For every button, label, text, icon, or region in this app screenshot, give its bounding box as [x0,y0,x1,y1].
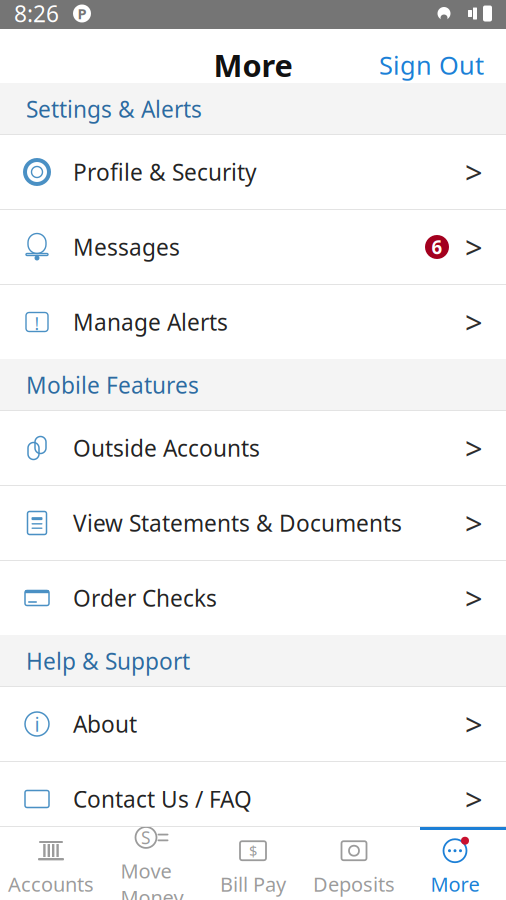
staticText: Manage Alerts [73,307,228,337]
staticText: About [73,709,137,739]
staticText: P [77,4,86,23]
staticText: Bill Pay [220,871,286,897]
button[interactable]: Deposits [303,830,404,900]
staticText: Help & Support [26,646,190,676]
staticText: Order Checks [73,583,217,613]
staticText: Profile & Security [73,157,257,187]
button[interactable]: Sign Out [365,36,498,94]
button[interactable]: More [404,830,505,900]
staticText: Accounts [8,871,94,897]
staticText: Messages [73,232,180,262]
button[interactable]: ! [0,285,506,359]
staticText: S [141,826,151,849]
button[interactable]: Outside Accounts [0,411,506,485]
button[interactable]: View Statements & Documents [0,486,506,560]
staticText: i [34,711,39,737]
staticText: > [465,578,483,618]
staticText: More [430,871,479,897]
staticText: > [465,503,483,543]
button[interactable]: S [101,830,202,900]
staticText: Mobile Features [26,370,199,400]
button[interactable]: Order Checks [0,561,506,635]
staticText: > [465,227,483,267]
staticText: > [465,704,483,744]
staticText: > [465,302,483,342]
staticText: Sign Out [379,48,484,82]
staticText: More [213,45,292,85]
staticText: View Statements & Documents [73,508,402,538]
button[interactable]: i [0,687,506,761]
staticText: Outside Accounts [73,433,260,463]
staticText: > [465,428,483,468]
staticText: 6 [431,235,442,259]
staticText: Deposits [313,871,395,897]
button[interactable]: Profile & Security [0,135,506,209]
button[interactable]: Accounts [0,830,101,900]
staticText: 8:26 [14,0,59,28]
button[interactable]: Messages [0,210,506,284]
button[interactable]: $ [202,830,303,900]
staticText: Settings & Alerts [26,94,202,124]
staticText: $ [249,841,257,860]
staticText: ! [34,312,39,335]
staticText: > [465,779,483,819]
staticText: > [465,152,483,192]
staticText: Contact Us / FAQ [73,784,252,814]
button[interactable]: Contact Us / FAQ [0,762,506,836]
staticText: Move Money [120,857,183,900]
